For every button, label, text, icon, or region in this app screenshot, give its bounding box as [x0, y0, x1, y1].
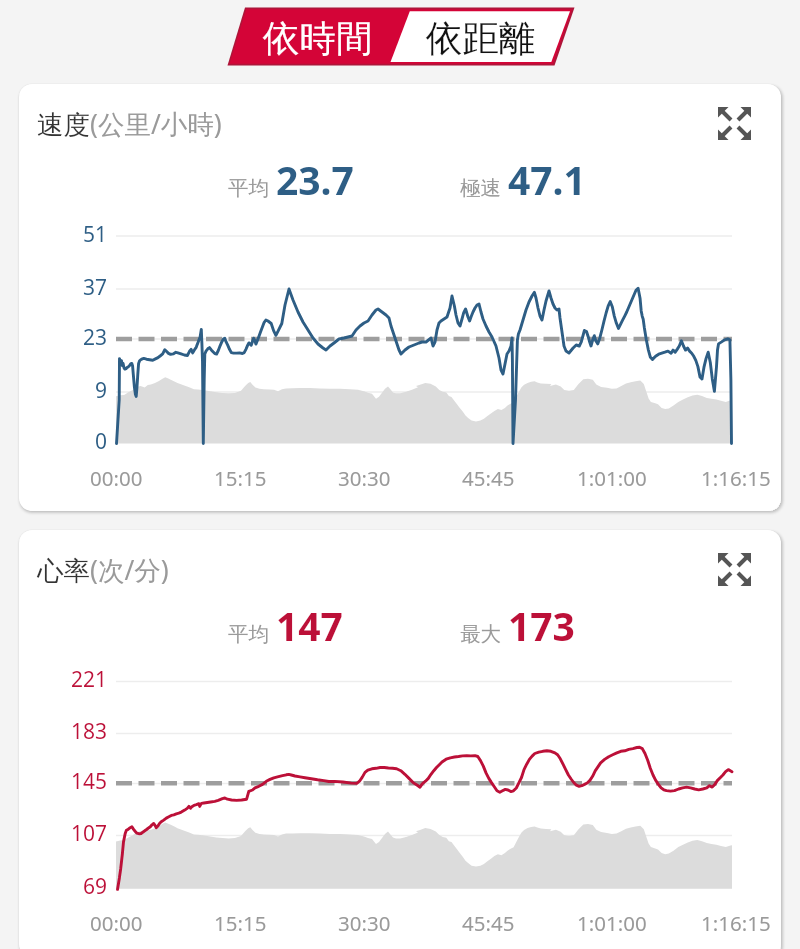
staticText: 30:30 [338, 464, 391, 492]
staticText: 47.1 [508, 153, 586, 206]
staticText: 依時間 [263, 16, 373, 62]
staticText: 173 [508, 599, 575, 652]
button[interactable]: Expand chart [718, 553, 751, 586]
staticText: 107 [71, 819, 108, 848]
staticText: 1:16:15 [701, 464, 771, 492]
staticText: 221 [71, 665, 108, 694]
staticText: 平均 [228, 621, 269, 647]
staticText: 23 [83, 323, 108, 352]
staticText: 145 [71, 767, 108, 796]
staticText: 69 [83, 872, 108, 901]
staticText: 51 [83, 220, 108, 249]
staticText: 15:15 [214, 909, 267, 937]
staticText: 心率(次/分) [37, 552, 169, 588]
staticText: 1:01:00 [577, 464, 647, 492]
staticText: 速度(公里/小時) [37, 106, 222, 142]
staticText: 23.7 [276, 153, 354, 206]
staticText: 依距離 [426, 16, 536, 62]
staticText: 15:15 [214, 464, 267, 492]
staticText: 最大 [460, 621, 501, 647]
staticText: 147 [276, 599, 343, 652]
button[interactable]: Expand chart [718, 107, 751, 140]
staticText: 45:45 [462, 909, 515, 937]
staticText: 平均 [228, 175, 269, 201]
staticText: 30:30 [338, 909, 391, 937]
staticText: 0 [95, 427, 108, 456]
button[interactable]: 依距離 [393, 8, 569, 70]
staticText: 37 [83, 273, 108, 302]
staticText: 1:01:00 [577, 909, 647, 937]
staticText: 00:00 [90, 909, 143, 937]
staticText: 00:00 [90, 464, 143, 492]
staticText: 極速 [460, 175, 501, 201]
staticText: 45:45 [462, 464, 515, 492]
staticText: 9 [95, 376, 108, 405]
staticText: 183 [71, 717, 108, 746]
button[interactable]: 依時間 [230, 8, 406, 70]
staticText: 1:16:15 [701, 909, 771, 937]
